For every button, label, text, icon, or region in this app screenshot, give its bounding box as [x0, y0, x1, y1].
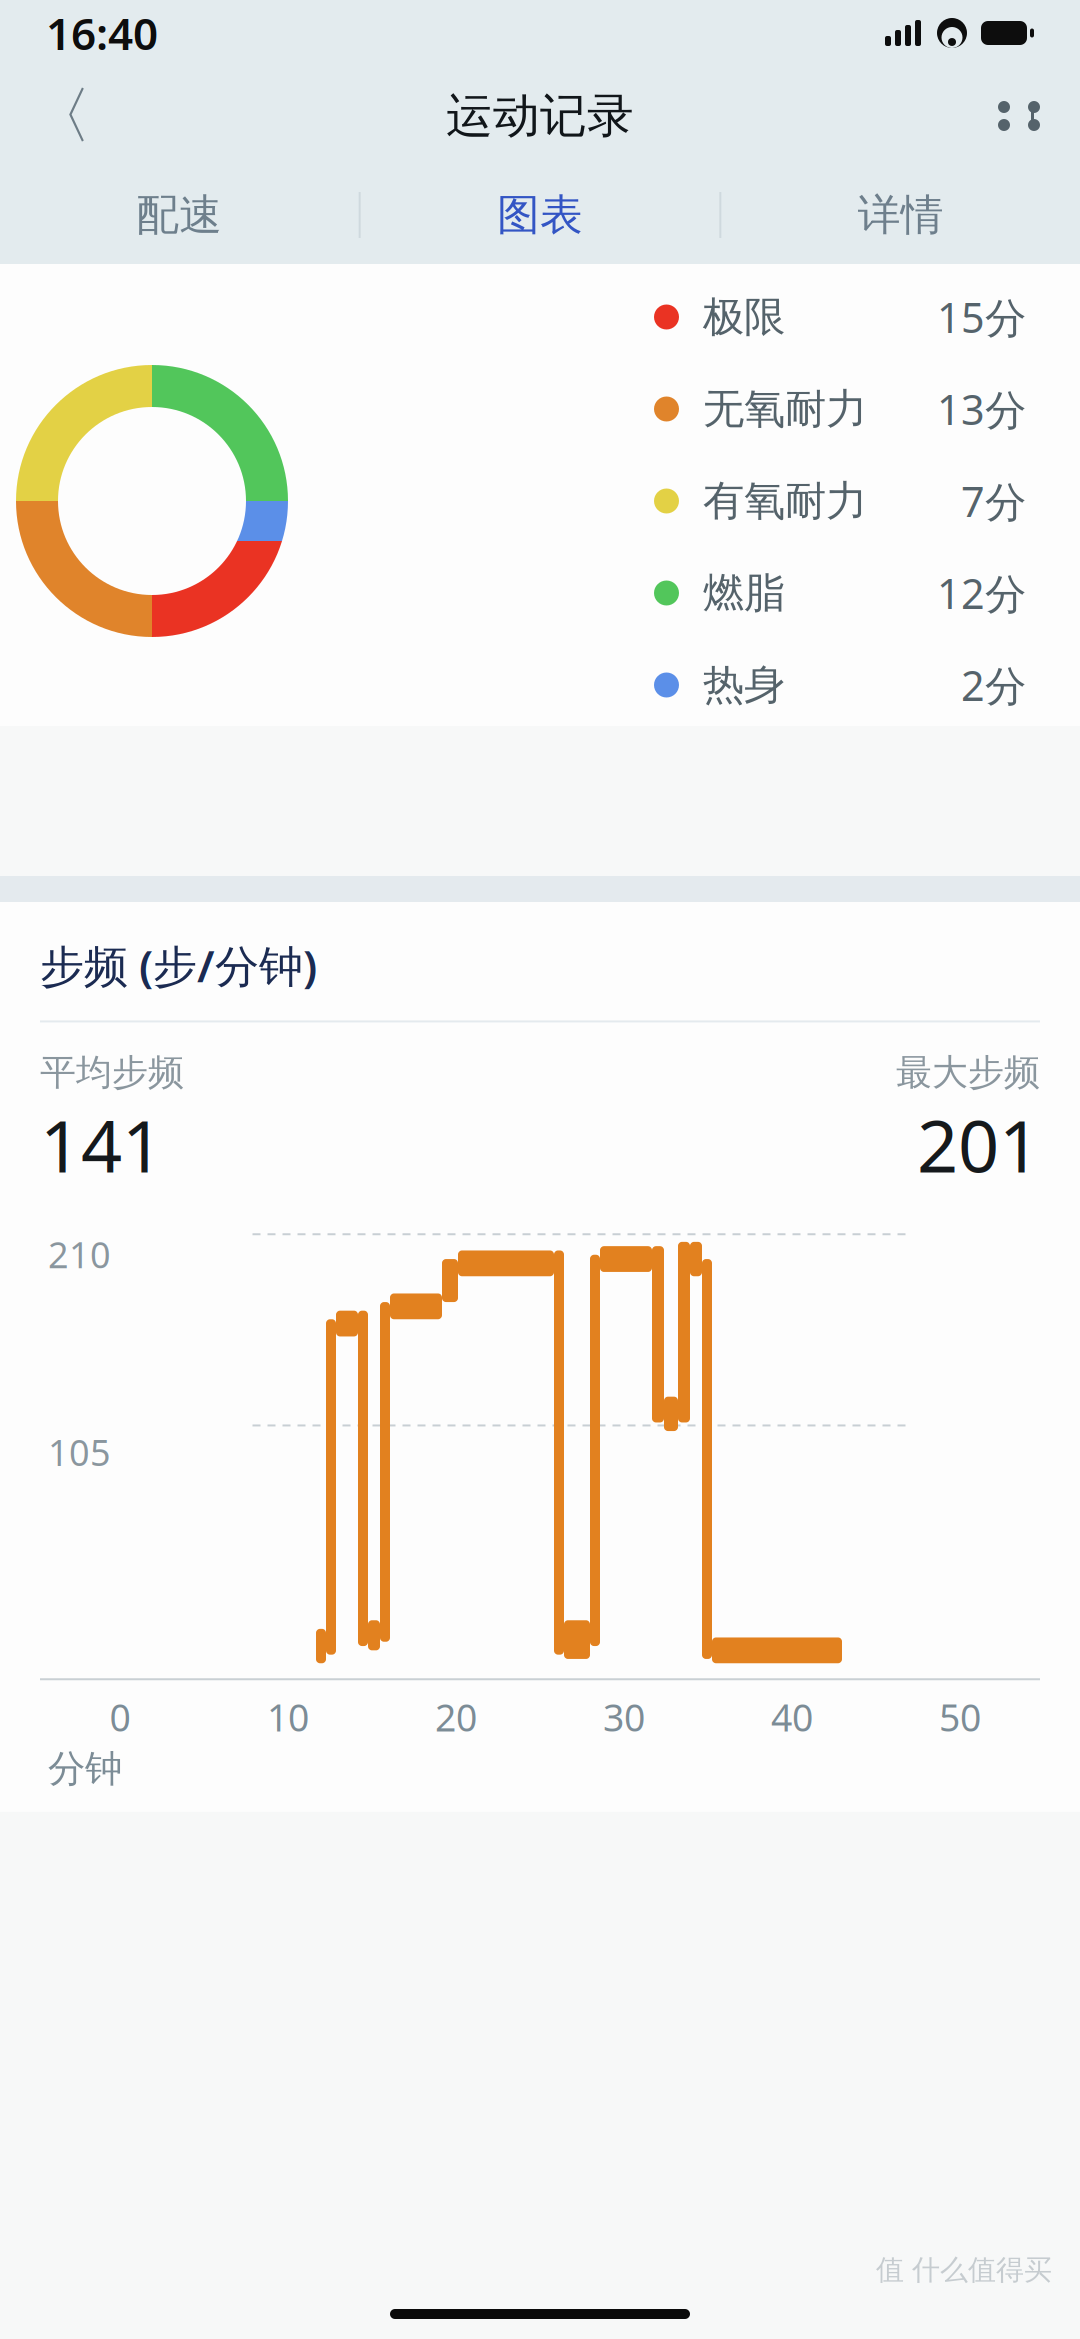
staticText: 配速 — [136, 189, 222, 241]
staticText: 燃脂 — [703, 568, 785, 618]
staticText: 无氧耐力 — [703, 384, 867, 434]
button[interactable]: 详情 — [721, 166, 1080, 264]
staticText: 0 — [109, 1692, 130, 1742]
staticText: 7分 — [961, 474, 1026, 528]
staticText: 〈 — [30, 78, 91, 154]
button[interactable]: 返回 — [28, 83, 94, 149]
staticText: 图表 — [497, 189, 583, 241]
staticText: 分钟 — [48, 1746, 122, 1792]
staticText: 12分 — [937, 566, 1026, 620]
staticText: 详情 — [858, 189, 944, 241]
staticText: 30 — [603, 1692, 645, 1742]
staticText: 平均步频 — [40, 1050, 184, 1095]
staticText: 10 — [267, 1692, 309, 1742]
staticText: 最大步频 — [896, 1050, 1040, 1095]
staticText: 运动记录 — [446, 87, 634, 145]
staticText: 20 — [435, 1692, 477, 1742]
button[interactable]: 分享 — [986, 83, 1052, 149]
staticText: 40 — [771, 1692, 813, 1742]
staticText: 16:40 — [46, 4, 158, 62]
staticText: 步频 (步/分钟) — [40, 936, 317, 994]
staticText: 141 — [40, 1097, 163, 1192]
staticText: 极限 — [703, 292, 785, 342]
staticText: 2分 — [961, 658, 1026, 712]
staticText: 有氧耐力 — [703, 476, 867, 526]
staticText: 值 什么值得买 — [876, 2253, 1052, 2287]
staticText: 201 — [917, 1097, 1040, 1192]
staticText: 210 — [48, 1230, 111, 1278]
button[interactable]: 配速 — [0, 166, 359, 264]
staticText: 热身 — [703, 660, 785, 710]
staticText: 105 — [48, 1428, 111, 1476]
staticText: 13分 — [937, 382, 1026, 436]
staticText: 50 — [939, 1692, 981, 1742]
button[interactable]: 图表 — [361, 166, 719, 264]
staticText: 15分 — [937, 290, 1026, 344]
